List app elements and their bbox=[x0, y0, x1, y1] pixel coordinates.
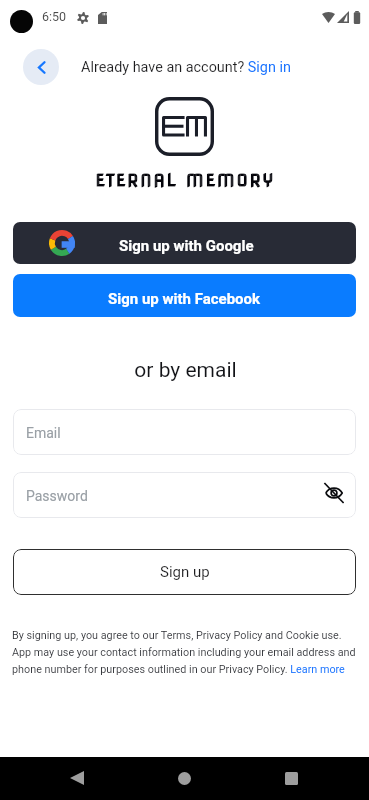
staticText: Sign up bbox=[160, 563, 210, 581]
staticText: Sign up with Google bbox=[119, 237, 254, 255]
button[interactable]: Back bbox=[23, 49, 59, 85]
button[interactable]: Sign up with Google bbox=[13, 222, 356, 264]
button[interactable]: Sign up with Facebook bbox=[13, 274, 356, 317]
staticText: ETERNAL MEMORY bbox=[2, 171, 369, 190]
staticText: Sign up with Facebook bbox=[108, 290, 261, 308]
button[interactable]: Home bbox=[163, 757, 205, 799]
staticText: By signing up, you agree to our Terms, P… bbox=[12, 629, 357, 676]
staticText: or by email bbox=[2, 358, 369, 383]
staticText: Already have an account? Sign in bbox=[3, 59, 369, 76]
button[interactable]: Back bbox=[56, 757, 98, 799]
button[interactable]: Sign up bbox=[13, 549, 356, 595]
button[interactable]: Email bbox=[13, 409, 356, 455]
staticText: Password bbox=[26, 488, 88, 504]
button[interactable]: Show password bbox=[320, 479, 348, 507]
staticText: ETERNAL MEMORY bbox=[2, 171, 369, 190]
staticText: Email bbox=[26, 425, 61, 441]
staticText: 6:50 bbox=[42, 9, 67, 24]
button[interactable]: Password bbox=[13, 472, 356, 518]
button[interactable]: Recent apps bbox=[270, 757, 312, 799]
